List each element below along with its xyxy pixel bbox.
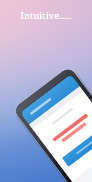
staticText: Intuitive..... xyxy=(4,9,88,21)
button[interactable]: Next xyxy=(56,126,72,142)
